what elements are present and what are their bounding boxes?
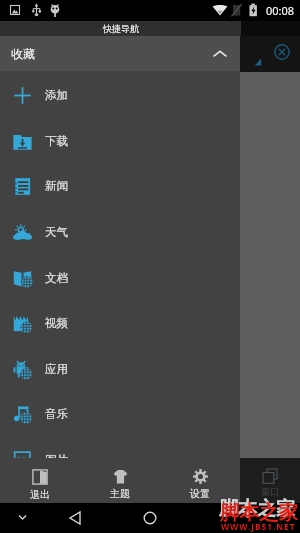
staticText: 快捷导航 (103, 23, 139, 34)
button[interactable]: 音乐 (0, 391, 240, 437)
button[interactable]: 收藏 (0, 36, 240, 71)
staticText: 新闻 (45, 179, 68, 193)
staticText: 主题 (110, 487, 130, 500)
button[interactable]: 视频 (0, 300, 240, 346)
button[interactable]: 设置 (160, 458, 240, 503)
staticText: 00:08 (266, 3, 295, 18)
button[interactable]: 退出 (0, 458, 80, 503)
staticText: 应用 (45, 362, 68, 376)
button[interactable]: 文档 (0, 255, 240, 301)
button[interactable]: 下载 (0, 118, 240, 164)
staticText: 下载 (45, 134, 68, 148)
button[interactable]: 天气 (0, 209, 240, 255)
staticText: 脚本之家 (219, 497, 295, 521)
staticText: 退出 (30, 488, 50, 501)
staticText: 图片 (45, 453, 68, 458)
button[interactable]: 新闻 (0, 163, 240, 209)
button[interactable]: 添加 (0, 72, 240, 118)
other: Collapse (211, 45, 229, 63)
staticText: WWW.JB51.NET (221, 521, 296, 533)
staticText: 设置 (190, 487, 210, 500)
staticText: 收藏 (11, 46, 35, 61)
staticText: 窗口 (261, 486, 279, 497)
staticText: 脚本之家 (220, 500, 298, 525)
staticText: 文档 (45, 271, 68, 285)
staticText: 添加 (45, 88, 68, 102)
button[interactable]: 主题 (80, 458, 160, 503)
staticText: 音乐 (45, 407, 68, 421)
staticText: 视频 (45, 316, 68, 330)
button[interactable]: 应用 (0, 346, 240, 392)
button[interactable]: 图片 (0, 437, 240, 458)
staticText: 天气 (45, 225, 68, 239)
